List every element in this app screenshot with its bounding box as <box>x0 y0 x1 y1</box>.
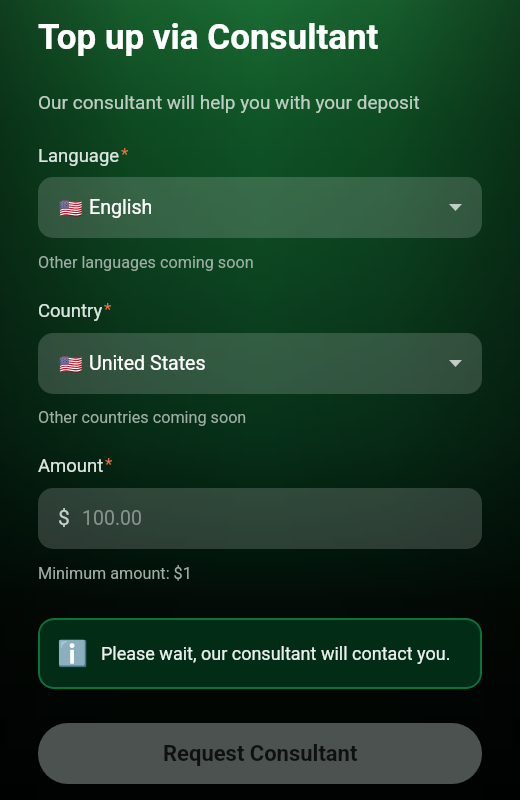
button[interactable]: 🇺🇸 <box>38 333 482 394</box>
staticText: United States <box>89 352 206 375</box>
staticText: * <box>121 144 129 164</box>
staticText: English <box>89 196 153 219</box>
staticText: $ <box>58 506 70 531</box>
staticText: 100.00 <box>82 507 142 530</box>
button[interactable]: Request Consultant <box>38 723 482 784</box>
staticText: * <box>104 299 112 319</box>
staticText: Other countries coming soon <box>38 408 247 427</box>
staticText: Language <box>38 145 120 167</box>
staticText: Other languages coming soon <box>38 253 254 272</box>
staticText: Minimum amount: $1 <box>38 564 192 583</box>
button[interactable]: $ <box>38 488 482 549</box>
staticText: Request Consultant <box>163 741 358 767</box>
staticText: 🇺🇸 <box>59 353 83 375</box>
staticText: Our consultant will help you with your d… <box>38 91 420 113</box>
button[interactable]: ℹ️ <box>38 618 482 689</box>
staticText: Top up via Consultant <box>38 17 379 58</box>
staticText: Country <box>38 300 103 322</box>
staticText: Please wait, our consultant will contact… <box>101 643 451 664</box>
button[interactable]: 🇺🇸 <box>38 177 482 238</box>
staticText: 🇺🇸 <box>59 197 83 219</box>
staticText: Amount <box>38 455 104 477</box>
staticText: ℹ️ <box>57 639 89 668</box>
staticText: * <box>105 454 113 474</box>
